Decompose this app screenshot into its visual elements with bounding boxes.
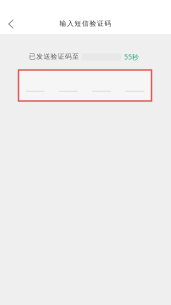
- button[interactable]: 55秒: [124, 53, 139, 61]
- staticText: 输入短信验证码: [59, 19, 111, 28]
- staticText: 已发送验证码至: [29, 53, 79, 61]
- button[interactable]: Back: [2, 15, 19, 32]
- button[interactable]: Verification code field: [18, 70, 151, 101]
- staticText: 55秒: [124, 53, 139, 61]
